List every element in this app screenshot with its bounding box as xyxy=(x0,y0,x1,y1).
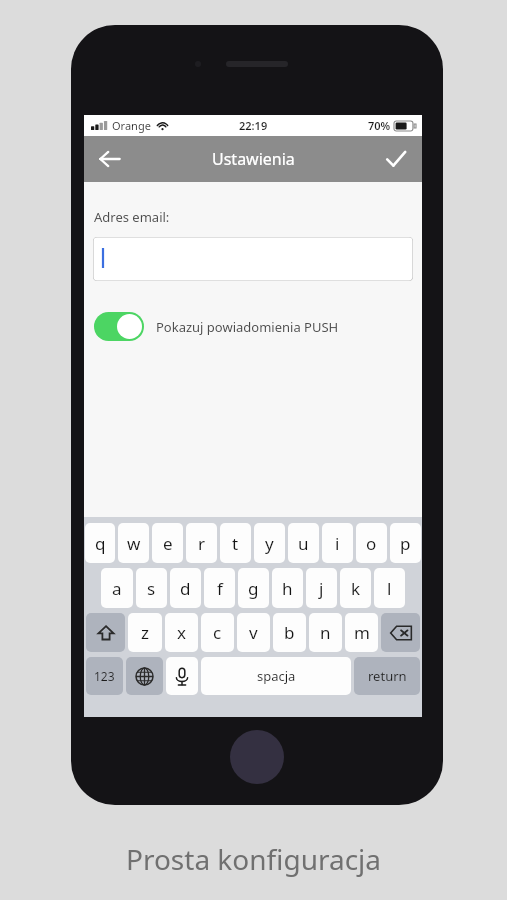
staticText: s xyxy=(147,577,156,600)
staticText: j xyxy=(319,577,324,600)
staticText: 22:19 xyxy=(239,118,268,133)
button[interactable]: c xyxy=(201,613,234,652)
button[interactable]: f xyxy=(204,568,235,608)
button[interactable]: spacja xyxy=(201,657,351,695)
staticText: w xyxy=(127,532,141,555)
button[interactable]: 123 xyxy=(86,657,123,695)
staticText: z xyxy=(141,621,149,644)
button[interactable]: u xyxy=(288,523,319,563)
staticText: Pokazuj powiadomienia PUSH xyxy=(156,318,339,336)
button[interactable]: y xyxy=(254,523,285,563)
staticText: v xyxy=(249,621,258,644)
button[interactable]: Pokazuj powiadomienia PUSH xyxy=(94,312,422,341)
button[interactable]: x xyxy=(165,613,198,652)
staticText: q xyxy=(95,532,106,555)
button[interactable]: a xyxy=(101,568,133,608)
staticText: spacja xyxy=(257,667,296,685)
button[interactable]: n xyxy=(309,613,342,652)
staticText: Orange xyxy=(112,118,151,133)
staticText: Prosta konfiguracja xyxy=(0,840,507,878)
staticText: y xyxy=(265,532,274,555)
button[interactable]: w xyxy=(118,523,149,563)
button[interactable]: return xyxy=(354,657,420,695)
button[interactable]: o xyxy=(356,523,387,563)
staticText: 70% xyxy=(368,118,391,133)
staticText: m xyxy=(354,621,370,644)
button[interactable]: t xyxy=(220,523,251,563)
staticText: g xyxy=(248,577,259,600)
button[interactable]: r xyxy=(186,523,217,563)
staticText: 123 xyxy=(94,668,115,684)
staticText: t xyxy=(232,532,239,555)
button[interactable]: e xyxy=(152,523,183,563)
staticText: f xyxy=(217,577,223,600)
button[interactable]: m xyxy=(345,613,378,652)
button[interactable]: Key xyxy=(381,613,420,652)
staticText: Adres email: xyxy=(94,208,170,226)
staticText: h xyxy=(282,577,293,600)
staticText: c xyxy=(213,621,222,644)
button[interactable]: i xyxy=(322,523,353,563)
button[interactable]: l xyxy=(374,568,405,608)
staticText: n xyxy=(320,621,331,644)
staticText: u xyxy=(298,532,309,555)
button[interactable]: q xyxy=(85,523,115,563)
button[interactable]: s xyxy=(136,568,167,608)
button[interactable]: Key xyxy=(86,613,125,652)
button[interactable]: g xyxy=(238,568,269,608)
staticText: p xyxy=(400,532,411,555)
button[interactable]: k xyxy=(340,568,371,608)
button[interactable]: z xyxy=(128,613,162,652)
staticText: return xyxy=(368,667,407,685)
staticText: o xyxy=(366,532,377,555)
button[interactable]: b xyxy=(273,613,306,652)
button[interactable]: p xyxy=(390,523,421,563)
button[interactable] xyxy=(166,657,198,695)
staticText: i xyxy=(335,532,340,555)
button[interactable]: Key xyxy=(126,657,163,695)
staticText: r xyxy=(198,532,206,555)
staticText: e xyxy=(163,532,173,555)
button[interactable]: Back xyxy=(90,139,130,179)
staticText: k xyxy=(351,577,361,600)
button[interactable]: j xyxy=(306,568,337,608)
staticText: d xyxy=(180,577,191,600)
button[interactable] xyxy=(93,237,413,281)
staticText: l xyxy=(387,577,392,600)
button[interactable]: d xyxy=(170,568,201,608)
staticText: a xyxy=(112,577,122,600)
button[interactable]: Save xyxy=(376,139,416,179)
button[interactable]: h xyxy=(272,568,303,608)
staticText: x xyxy=(177,621,186,644)
staticText: b xyxy=(284,621,295,644)
staticText: Ustawienia xyxy=(212,148,295,170)
button[interactable]: v xyxy=(237,613,270,652)
